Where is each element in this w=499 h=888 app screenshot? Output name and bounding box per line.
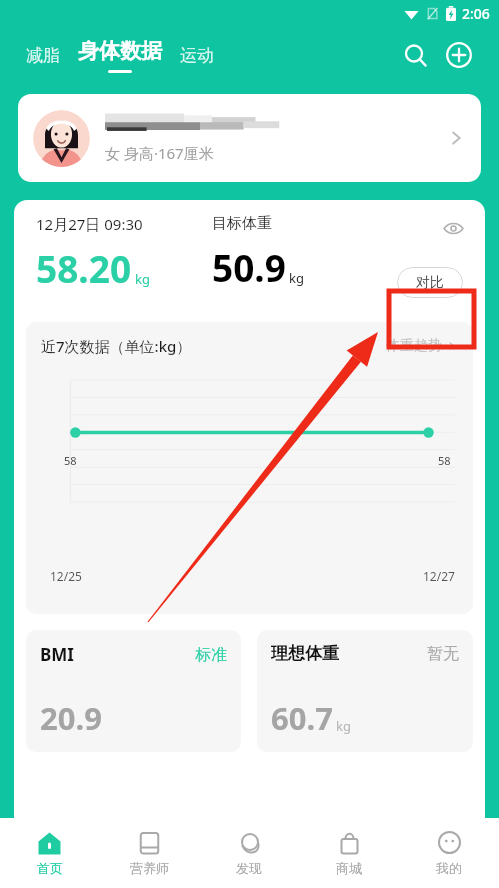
button[interactable]: 发现 — [199, 818, 299, 888]
staticText: 近7次数据（单位:kg） — [41, 336, 192, 356]
button[interactable]: 对比 — [397, 267, 463, 298]
staticText: 理想体重 — [271, 643, 339, 664]
staticText: 营养师 — [130, 860, 169, 876]
staticText: 女 身高·167厘米 — [105, 143, 214, 163]
staticText: 暂无 — [427, 644, 459, 664]
staticText: 58.20 — [36, 243, 132, 293]
button[interactable]: 首页 — [0, 818, 99, 888]
staticText: 运动 — [180, 45, 214, 66]
staticText: 减脂 — [26, 45, 60, 66]
staticText: 对比 — [416, 274, 444, 292]
staticText: 12/25 — [50, 568, 82, 584]
staticText: 身体数据 — [78, 38, 162, 64]
button[interactable]: 我的 — [399, 818, 499, 888]
staticText: 58 — [64, 453, 77, 468]
staticText: 首页 — [37, 860, 63, 876]
button[interactable]: 体重趋势 — [386, 337, 458, 355]
button[interactable]: Search — [395, 35, 435, 75]
button[interactable]: BMI — [26, 630, 241, 752]
button[interactable]: 减脂 — [24, 39, 62, 72]
button[interactable]: 营养师 — [99, 818, 199, 888]
staticText: 58 — [438, 453, 451, 468]
staticText: 20.9 — [40, 697, 102, 739]
staticText: 12月27日 09:30 — [36, 214, 143, 234]
staticText: 发现 — [236, 860, 262, 876]
button[interactable]: Toggle visibility — [439, 214, 467, 242]
button[interactable]: Add — [439, 35, 479, 75]
button[interactable]: 身体数据 — [78, 36, 162, 75]
staticText: 2:06 — [462, 4, 490, 23]
staticText: kg — [289, 269, 304, 287]
staticText: 50.9 — [212, 242, 286, 292]
staticText: kg — [336, 717, 351, 735]
staticText: kg — [135, 270, 150, 288]
staticText: 60.7 — [271, 697, 333, 739]
staticText: 12/27 — [423, 568, 455, 584]
button[interactable]: 运动 — [178, 39, 216, 72]
staticText: 标准 — [195, 645, 227, 665]
button[interactable]: 商城 — [299, 818, 399, 888]
staticText: BMI — [40, 643, 74, 666]
staticText: 体重趋势 — [386, 337, 442, 355]
button[interactable]: 理想体重 — [257, 630, 473, 752]
staticText: 商城 — [336, 860, 362, 876]
staticText: 目标体重 — [212, 214, 272, 233]
button[interactable]: 女 身高·167厘米 — [18, 94, 481, 182]
staticText: 我的 — [436, 860, 462, 876]
